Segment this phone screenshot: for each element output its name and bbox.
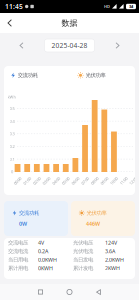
staticText: 0KWH — [38, 265, 53, 272]
button[interactable]: Back — [91, 284, 106, 300]
staticText: 0.0KWH — [38, 256, 57, 263]
staticText: 12:00 — [129, 178, 138, 184]
staticText: 09:00 — [100, 178, 109, 184]
staticText: 0 — [11, 169, 13, 174]
staticText: 10:00 — [109, 178, 118, 184]
button[interactable]: 交流功耗 — [4, 66, 31, 73]
staticText: 446W — [86, 220, 100, 227]
staticText: 光伏功率 — [86, 210, 106, 216]
staticText: 交流功耗 — [18, 72, 38, 79]
staticText: 2025-04-28 — [51, 41, 87, 50]
staticText: 02:00 — [32, 178, 41, 184]
staticText: 交流功耗 — [19, 210, 39, 216]
staticText: 当日用电 — [8, 256, 28, 263]
staticText: 交流电压 — [8, 239, 28, 246]
staticText: 累计发电 — [73, 265, 93, 272]
button[interactable]: Next day — [112, 39, 123, 52]
staticText: 07:00 — [80, 178, 89, 184]
staticText: 0.1 — [9, 156, 14, 162]
staticText: 0.5 — [9, 106, 14, 111]
staticText: 0.4 — [9, 118, 14, 124]
button[interactable]: 光伏功率 — [71, 201, 135, 236]
button[interactable]: Home — [62, 284, 77, 300]
staticText: HD — [104, 4, 110, 9]
staticText: 06:00 — [71, 178, 80, 184]
button[interactable]: Recents — [33, 284, 48, 299]
staticText: 34 — [129, 4, 133, 9]
staticText: 0.2A — [38, 248, 48, 255]
staticText: kWh — [7, 94, 15, 100]
staticText: 0.3 — [9, 131, 14, 136]
staticText: 2.0KWH — [105, 256, 124, 263]
staticText: 01:00 — [23, 178, 32, 184]
staticText: 03:00 — [42, 178, 51, 184]
staticText: 光伏电压 — [73, 239, 93, 246]
staticText: 2KWH — [105, 265, 120, 272]
staticText: 00:00 — [13, 178, 22, 184]
staticText: 光伏功率 — [85, 72, 105, 79]
staticText: 当日发电 — [73, 256, 93, 263]
button[interactable]: Back — [0, 13, 21, 33]
staticText: 累计用电 — [8, 265, 28, 272]
staticText: 0W — [19, 220, 27, 227]
staticText: 11:00 — [119, 178, 128, 184]
staticText: 数据 — [61, 18, 77, 28]
staticText: 08:00 — [90, 178, 99, 184]
staticText: 04:00 — [52, 178, 61, 184]
staticText: 3.6A — [105, 248, 115, 255]
button[interactable]: 交流功耗 — [4, 201, 68, 236]
button[interactable]: Select date — [44, 39, 94, 52]
button[interactable]: 光伏功率 — [4, 66, 32, 73]
staticText: 交流电流 — [8, 248, 28, 255]
staticText: 4V — [38, 239, 44, 246]
button[interactable]: Previous day — [16, 39, 27, 52]
staticText: 124V — [105, 239, 117, 246]
staticText: 05:00 — [61, 178, 70, 184]
staticText: 光伏电流 — [73, 248, 93, 255]
staticText: 11:45 — [5, 2, 23, 11]
staticText: 0.2 — [9, 144, 14, 149]
